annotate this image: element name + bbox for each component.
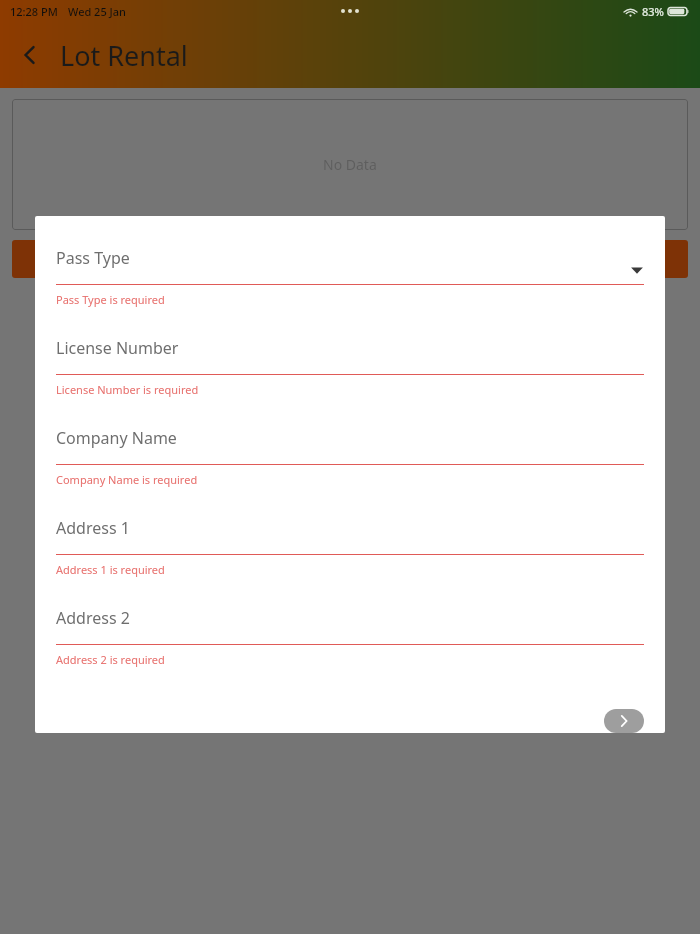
button[interactable]: Back bbox=[6, 31, 54, 79]
staticText: Pass Type is required bbox=[56, 292, 165, 307]
staticText: Address 1 bbox=[56, 517, 130, 539]
button[interactable]: Next bbox=[604, 709, 644, 733]
staticText: Lot Rental bbox=[60, 37, 188, 74]
staticText: Wed 25 Jan bbox=[68, 4, 126, 19]
staticText: Address 2 is required bbox=[56, 652, 165, 667]
button[interactable] bbox=[12, 240, 688, 278]
staticText: Address 2 bbox=[56, 607, 130, 629]
staticText: No Data bbox=[323, 155, 377, 174]
staticText: License Number bbox=[56, 337, 179, 359]
staticText: 83% bbox=[642, 4, 664, 19]
staticText: Company Name bbox=[56, 427, 177, 449]
button[interactable]: Address 1 bbox=[56, 517, 644, 607]
staticText: License Number is required bbox=[56, 382, 199, 397]
staticText: Company Name is required bbox=[56, 472, 198, 487]
staticText: 12:28 PM bbox=[10, 4, 58, 19]
button[interactable]: Address 2 bbox=[56, 607, 644, 697]
button[interactable]: Company Name bbox=[56, 427, 644, 517]
staticText: Address 1 is required bbox=[56, 562, 165, 577]
button[interactable]: Pass Type bbox=[56, 247, 644, 337]
button[interactable]: License Number bbox=[56, 337, 644, 427]
staticText: Pass Type bbox=[56, 247, 130, 269]
